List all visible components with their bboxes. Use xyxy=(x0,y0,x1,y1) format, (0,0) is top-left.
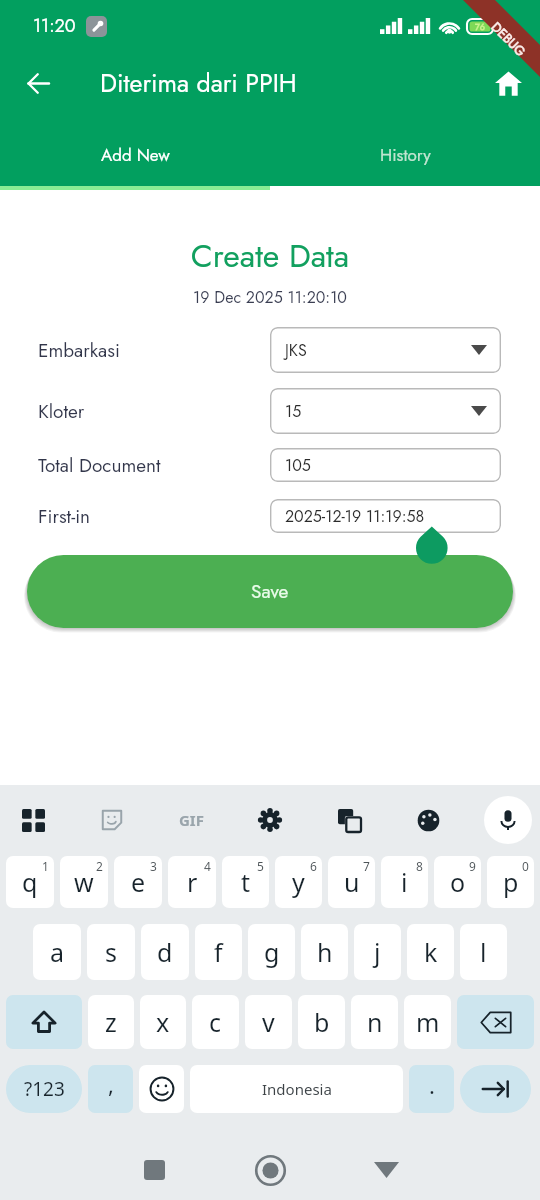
staticText: 9 xyxy=(469,858,476,874)
button[interactable]: History xyxy=(270,124,540,186)
button[interactable]: z xyxy=(88,995,134,1049)
button[interactable]: Back xyxy=(350,1140,422,1200)
button[interactable]: q xyxy=(6,856,54,908)
staticText: 19 Dec 2025 11:20:10 xyxy=(0,286,540,309)
button[interactable]: Add New xyxy=(0,124,270,186)
staticText: 11:20 xyxy=(33,13,76,39)
button[interactable]: e xyxy=(114,856,162,908)
button[interactable]: Themes xyxy=(405,797,451,843)
button[interactable]: a xyxy=(33,924,81,980)
button[interactable]: b xyxy=(298,995,345,1049)
button[interactable]: 15 xyxy=(270,388,501,434)
staticText: 15 xyxy=(285,400,302,423)
staticText: First-in xyxy=(38,503,91,530)
button[interactable]: Translate xyxy=(326,797,372,843)
button[interactable]: t xyxy=(222,856,269,908)
staticText: Save xyxy=(251,578,289,605)
staticText: 4 xyxy=(204,858,211,874)
button[interactable]: l xyxy=(460,924,507,980)
button[interactable]: Back xyxy=(0,52,76,114)
staticText: Add New xyxy=(101,143,170,168)
staticText: c xyxy=(209,1005,222,1039)
button[interactable]: s xyxy=(87,924,135,980)
staticText: j xyxy=(374,935,381,969)
staticText: z xyxy=(105,1005,117,1039)
button[interactable]: , xyxy=(88,1065,133,1113)
button[interactable]: d xyxy=(141,924,189,980)
button[interactable]: 105 xyxy=(270,448,501,482)
staticText: DEBUG xyxy=(487,18,530,61)
button[interactable]: Emoji xyxy=(139,1065,184,1113)
staticText: 8 xyxy=(416,858,423,874)
staticText: q xyxy=(22,865,38,899)
staticText: . xyxy=(429,1070,435,1100)
button[interactable]: Settings xyxy=(247,797,293,843)
staticText: b xyxy=(314,1005,330,1039)
staticText: s xyxy=(105,935,117,969)
button[interactable]: Home xyxy=(234,1140,306,1200)
button[interactable]: x xyxy=(140,995,186,1049)
staticText: 7 xyxy=(363,858,370,874)
button[interactable]: f xyxy=(195,924,242,980)
staticText: Diterima dari PPIH xyxy=(100,65,297,101)
staticText: v xyxy=(262,1005,275,1039)
staticText: u xyxy=(344,865,360,899)
button[interactable]: u xyxy=(328,856,375,908)
button[interactable]: p xyxy=(487,856,534,908)
button[interactable]: o xyxy=(434,856,481,908)
button[interactable]: i xyxy=(381,856,428,908)
button[interactable]: y xyxy=(275,856,322,908)
staticText: d xyxy=(157,935,173,969)
button[interactable]: Recents xyxy=(118,1140,190,1200)
button[interactable]: g xyxy=(248,924,295,980)
staticText: Total Document xyxy=(38,452,161,479)
button[interactable]: JKS xyxy=(270,327,501,373)
staticText: e xyxy=(131,865,146,899)
button[interactable]: Indonesia xyxy=(190,1065,403,1113)
button[interactable]: . xyxy=(409,1065,454,1113)
staticText: 105 xyxy=(285,454,311,477)
staticText: x xyxy=(156,1005,170,1039)
button[interactable]: 2025-12-19 11:19:58 xyxy=(270,499,501,533)
staticText: History xyxy=(380,143,431,168)
button[interactable]: Backspace xyxy=(457,995,534,1049)
staticText: Indonesia xyxy=(262,1079,332,1099)
staticText: 2 xyxy=(96,858,103,874)
button[interactable]: Shift xyxy=(6,995,82,1049)
button[interactable]: n xyxy=(351,995,398,1049)
button[interactable]: j xyxy=(354,924,401,980)
button[interactable]: Stickers xyxy=(89,797,135,843)
staticText: 2025-12-19 11:19:58 xyxy=(285,505,425,528)
button[interactable]: Enter xyxy=(460,1065,531,1113)
staticText: n xyxy=(367,1005,383,1039)
staticText: 1 xyxy=(42,858,49,874)
button[interactable]: Apps xyxy=(10,797,56,843)
staticText: , xyxy=(108,1069,114,1099)
staticText: ?123 xyxy=(24,1076,65,1102)
button[interactable]: c xyxy=(192,995,239,1049)
button[interactable]: r xyxy=(168,856,216,908)
button[interactable]: GIF xyxy=(168,797,214,843)
button[interactable]: Voice input xyxy=(484,796,532,844)
staticText: f xyxy=(214,935,223,969)
staticText: m xyxy=(416,1005,440,1039)
button[interactable]: Save xyxy=(27,555,513,628)
staticText: Embarkasi xyxy=(38,337,120,364)
button[interactable]: v xyxy=(245,995,292,1049)
staticText: 3 xyxy=(150,858,157,874)
staticText: h xyxy=(317,935,333,969)
staticText: 76 xyxy=(475,20,485,33)
button[interactable]: h xyxy=(301,924,348,980)
staticText: p xyxy=(503,865,519,899)
staticText: g xyxy=(264,935,280,969)
button[interactable]: w xyxy=(60,856,108,908)
button[interactable]: m xyxy=(404,995,451,1049)
button[interactable]: ?123 xyxy=(6,1065,82,1113)
staticText: o xyxy=(450,865,466,899)
staticText: k xyxy=(424,935,438,969)
staticText: i xyxy=(401,865,408,899)
button[interactable]: k xyxy=(407,924,454,980)
staticText: JKS xyxy=(285,339,307,362)
button[interactable]: Home xyxy=(476,52,540,114)
staticText: Create Data xyxy=(0,233,540,279)
